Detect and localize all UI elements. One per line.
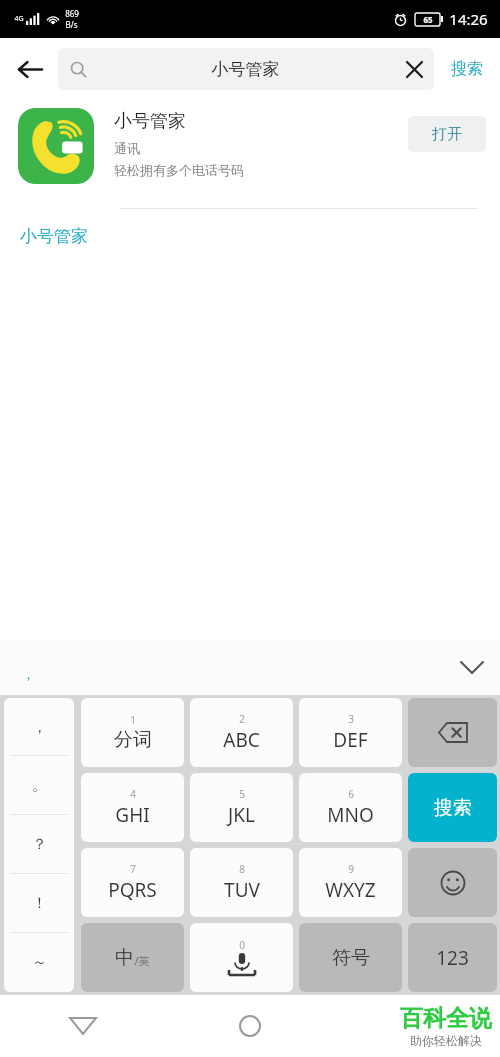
button[interactable]: ～ bbox=[4, 933, 74, 992]
button[interactable]: Emoji bbox=[408, 848, 497, 917]
staticText: 打开 bbox=[432, 125, 462, 144]
staticText: 8 bbox=[239, 862, 245, 876]
staticText: 小号管家 bbox=[114, 110, 186, 133]
button[interactable]: Clear bbox=[394, 49, 434, 89]
button[interactable]: 123 bbox=[408, 923, 497, 992]
staticText: 通讯 bbox=[114, 140, 140, 156]
staticText: 百科全说 bbox=[400, 1004, 492, 1033]
staticText: 搜索 bbox=[451, 59, 483, 79]
button[interactable]: Back bbox=[0, 995, 166, 1057]
staticText: JKL bbox=[228, 802, 255, 828]
staticText: B/s bbox=[65, 19, 78, 30]
staticText: 。 bbox=[32, 776, 47, 795]
button[interactable]: 7 bbox=[81, 848, 184, 917]
button[interactable]: 8 bbox=[190, 848, 293, 917]
staticText: 869 bbox=[65, 8, 79, 19]
staticText: PQRS bbox=[108, 877, 157, 903]
staticText: ， bbox=[32, 718, 47, 737]
button[interactable]: 打开 bbox=[408, 116, 486, 152]
staticText: ？ bbox=[32, 835, 47, 854]
staticText: 助你轻松解决 bbox=[410, 1033, 482, 1048]
staticText: WXYZ bbox=[325, 877, 376, 903]
staticText: /英 bbox=[134, 953, 150, 968]
staticText: 14:26 bbox=[449, 9, 488, 29]
staticText: 7 bbox=[130, 862, 136, 876]
button[interactable]: 搜索 bbox=[408, 773, 497, 842]
staticText: ， bbox=[22, 666, 35, 682]
staticText: 4 bbox=[130, 787, 136, 801]
staticText: GHI bbox=[115, 802, 150, 828]
button[interactable]: 。 bbox=[4, 756, 74, 815]
button[interactable]: 中 bbox=[81, 923, 184, 992]
button[interactable]: 小号管家 bbox=[0, 209, 500, 263]
button[interactable]: 1 bbox=[81, 698, 184, 767]
button[interactable]: 4 bbox=[81, 773, 184, 842]
staticText: 4G bbox=[14, 14, 24, 24]
staticText: TUV bbox=[224, 877, 260, 903]
button[interactable]: 3 bbox=[299, 698, 402, 767]
staticText: 轻松拥有多个电话号码 bbox=[114, 162, 244, 178]
button[interactable]: 小号管家 bbox=[0, 100, 500, 208]
button[interactable]: Backspace bbox=[408, 698, 497, 767]
button[interactable]: 9 bbox=[299, 848, 402, 917]
button[interactable]: 符号 bbox=[299, 923, 402, 992]
button[interactable]: 2 bbox=[190, 698, 293, 767]
staticText: 123 bbox=[436, 945, 469, 971]
staticText: MNO bbox=[327, 802, 374, 828]
staticText: 小号管家 bbox=[20, 226, 88, 247]
button[interactable]: ！ bbox=[4, 874, 74, 933]
staticText: 5 bbox=[239, 787, 245, 801]
staticText: 0 bbox=[239, 938, 245, 952]
staticText: 搜索 bbox=[434, 796, 472, 820]
staticText: DEF bbox=[333, 727, 368, 753]
staticText: 1 bbox=[130, 713, 136, 727]
staticText: 9 bbox=[348, 862, 354, 876]
button[interactable]: 搜索 bbox=[434, 38, 500, 100]
staticText: ！ bbox=[32, 894, 47, 913]
staticText: ABC bbox=[223, 727, 260, 753]
staticText: ～ bbox=[32, 953, 47, 972]
button[interactable]: 5 bbox=[190, 773, 293, 842]
staticText: 符号 bbox=[332, 946, 370, 970]
button[interactable]: ？ bbox=[4, 815, 74, 874]
staticText: 中 bbox=[115, 946, 134, 970]
staticText: 3 bbox=[348, 712, 354, 726]
button[interactable]: Home bbox=[166, 995, 333, 1057]
button[interactable]: ， bbox=[4, 698, 74, 756]
staticText: 小号管家 bbox=[97, 59, 394, 80]
staticText: 分词 bbox=[114, 728, 152, 752]
button[interactable]: 6 bbox=[299, 773, 402, 842]
button[interactable]: Back bbox=[0, 40, 58, 98]
button[interactable]: Voice input and space bbox=[190, 923, 293, 992]
button[interactable]: Hide keyboard bbox=[444, 639, 500, 695]
button[interactable]: 小号管家 bbox=[58, 48, 434, 90]
staticText: 2 bbox=[239, 712, 245, 726]
staticText: 6 bbox=[348, 787, 354, 801]
staticText: 65 bbox=[423, 14, 433, 25]
button[interactable]: Recents bbox=[333, 995, 500, 1057]
